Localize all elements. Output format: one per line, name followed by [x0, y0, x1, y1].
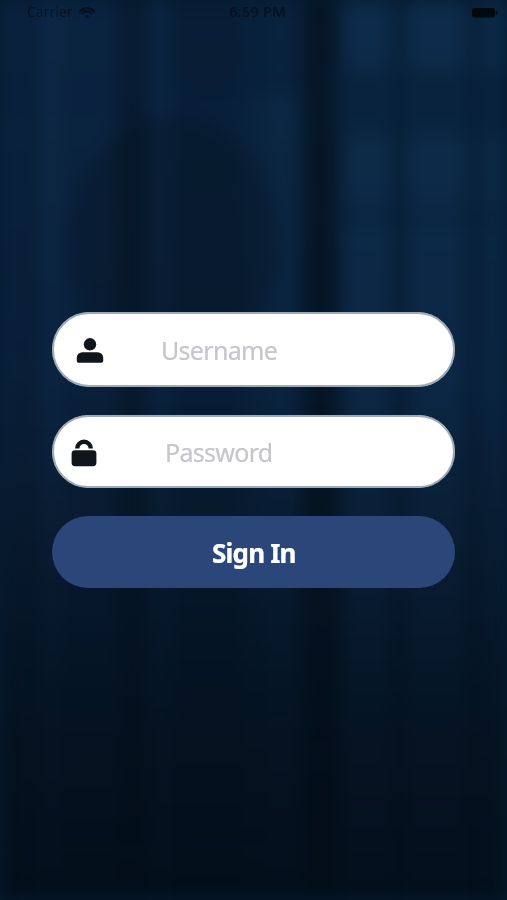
staticText: Username [161, 333, 278, 367]
staticText: 6:59 PM [229, 1, 286, 21]
button[interactable]: Sign In [52, 516, 455, 588]
staticText: Carrier [27, 2, 73, 21]
staticText: Password [165, 435, 273, 469]
staticText: Sign In [212, 535, 296, 570]
button[interactable]: Password [52, 415, 455, 488]
button[interactable]: Username [52, 312, 455, 387]
